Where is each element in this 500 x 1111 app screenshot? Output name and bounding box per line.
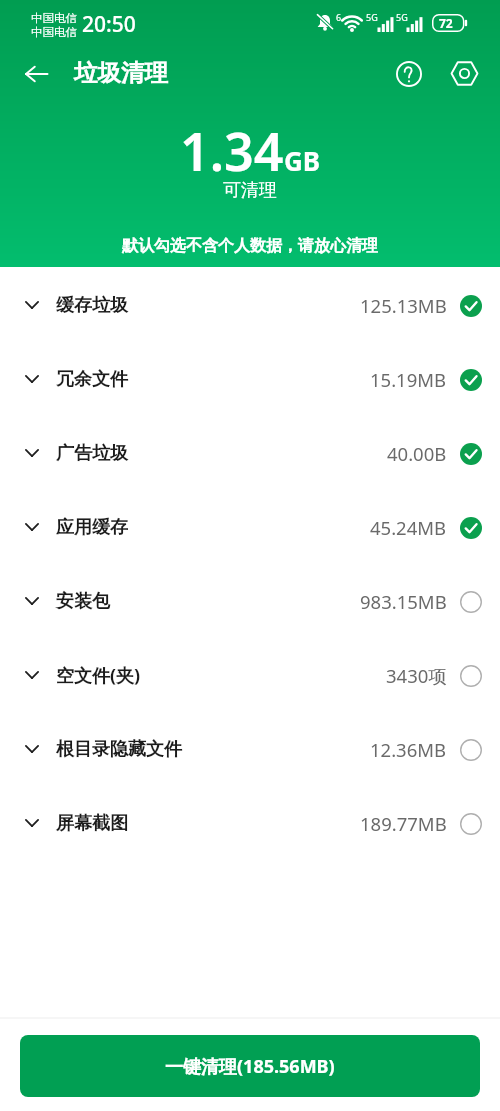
staticText: 45.24MB	[370, 515, 447, 540]
staticText: 安装包	[56, 590, 110, 613]
button[interactable]: 应用缓存	[0, 490, 500, 564]
staticText: 中国电信	[31, 25, 77, 39]
staticText: 缓存垃圾	[56, 294, 128, 317]
button[interactable]: 广告垃圾	[0, 416, 500, 490]
staticText: 15.19MB	[370, 367, 447, 392]
staticText: 空文件(夹)	[56, 663, 141, 688]
button[interactable]: Help	[387, 52, 430, 95]
button[interactable]: 冗余文件	[0, 342, 500, 416]
staticText: GB	[284, 143, 321, 178]
staticText: 189.77MB	[360, 811, 447, 836]
staticText: 5G	[366, 11, 378, 23]
staticText: 默认勾选不含个人数据，请放心清理	[0, 236, 500, 256]
staticText: 屏幕截图	[56, 812, 128, 835]
staticText: 应用缓存	[56, 516, 128, 539]
staticText: 一键清理(185.56MB)	[165, 1054, 335, 1079]
button[interactable]: Settings	[443, 52, 486, 95]
staticText: 72	[439, 15, 453, 31]
staticText: 3430项	[386, 663, 447, 688]
staticText: 冗余文件	[56, 368, 128, 391]
button[interactable]: 空文件(夹)	[0, 638, 500, 712]
button[interactable]: Back	[12, 50, 60, 98]
staticText: 983.15MB	[360, 589, 447, 614]
staticText: 垃圾清理	[74, 58, 168, 88]
staticText: 20:50	[82, 10, 136, 39]
staticText: 40.00B	[387, 441, 447, 466]
staticText: 12.36MB	[370, 737, 447, 762]
staticText: 6	[336, 11, 342, 23]
staticText: 125.13MB	[360, 293, 447, 318]
staticText: 可清理	[0, 179, 500, 202]
button[interactable]: 安装包	[0, 564, 500, 638]
button[interactable]: 屏幕截图	[0, 786, 500, 860]
button[interactable]: 一键清理(185.56MB)	[20, 1035, 480, 1097]
staticText: 1.34	[180, 115, 284, 186]
staticText: 中国电信	[31, 11, 77, 25]
button[interactable]: 根目录隐藏文件	[0, 712, 500, 786]
staticText: 广告垃圾	[56, 442, 128, 465]
staticText: 5G	[396, 11, 408, 23]
button[interactable]: 缓存垃圾	[0, 268, 500, 342]
staticText: 根目录隐藏文件	[56, 738, 182, 761]
